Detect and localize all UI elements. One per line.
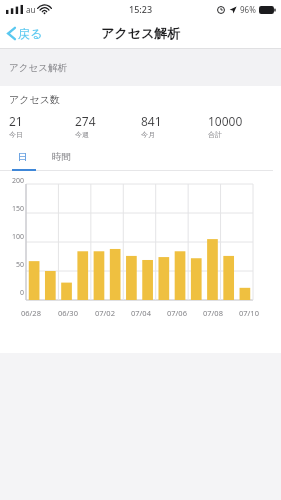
staticText: 96% bbox=[240, 4, 256, 15]
staticText: 07/10 bbox=[239, 308, 259, 318]
staticText: 06/28 bbox=[21, 308, 41, 318]
staticText: 150 bbox=[0, 204, 24, 212]
staticText: 戻る bbox=[18, 26, 43, 41]
staticText: 200 bbox=[0, 176, 24, 184]
staticText: アクセス解析 bbox=[101, 25, 181, 41]
staticText: 日 bbox=[18, 151, 28, 163]
staticText: 今週 bbox=[75, 130, 89, 139]
staticText: 841 bbox=[141, 113, 162, 129]
staticText: 今日 bbox=[9, 130, 23, 139]
staticText: au bbox=[26, 4, 36, 15]
staticText: 07/02 bbox=[95, 308, 115, 318]
staticText: 15:23 bbox=[129, 3, 153, 15]
staticText: アクセス数 bbox=[9, 93, 60, 106]
staticText: 07/04 bbox=[131, 308, 151, 318]
staticText: 07/08 bbox=[203, 308, 223, 318]
staticText: 今月 bbox=[141, 130, 155, 139]
staticText: 21 bbox=[9, 113, 23, 129]
button[interactable]: 時間 bbox=[48, 149, 75, 165]
button[interactable]: 戻る bbox=[0, 22, 51, 45]
staticText: 50 bbox=[0, 260, 24, 268]
button[interactable]: 日 bbox=[14, 149, 32, 165]
staticText: 10000 bbox=[208, 113, 243, 129]
staticText: 07/06 bbox=[167, 308, 187, 318]
staticText: 100 bbox=[0, 232, 24, 240]
staticText: 06/30 bbox=[58, 308, 78, 318]
staticText: アクセス解析 bbox=[9, 62, 67, 74]
staticText: 合計 bbox=[208, 130, 222, 139]
staticText: 274 bbox=[75, 113, 96, 129]
staticText: 時間 bbox=[52, 151, 71, 163]
staticText: 0 bbox=[0, 288, 24, 296]
